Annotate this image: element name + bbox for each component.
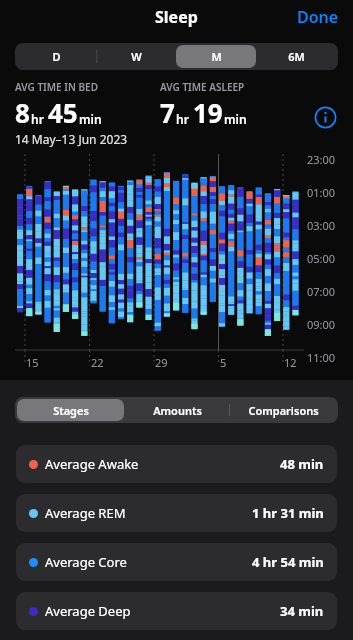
staticText: Done (297, 6, 339, 28)
staticText: min (224, 111, 247, 127)
staticText: 1 hr 31 min (252, 504, 324, 522)
staticText: 14 May–13 Jun 2023 (15, 131, 128, 147)
staticText: Average Core (45, 553, 127, 571)
staticText: Sleep (155, 6, 198, 28)
button[interactable]: Amounts (124, 399, 230, 421)
staticText: 48 min (280, 455, 324, 473)
staticText: 12 (284, 355, 297, 370)
staticText: Stages (53, 403, 89, 418)
staticText: 34 min (280, 602, 324, 620)
button[interactable]: 6M (256, 45, 336, 68)
staticText: Comparisons (248, 403, 319, 418)
button[interactable]: Average REM (16, 494, 337, 532)
staticText: M (211, 49, 222, 64)
button[interactable]: Information (313, 105, 337, 129)
staticText: 29 (155, 355, 168, 370)
staticText: 11:00 (307, 350, 336, 365)
staticText: 01:00 (307, 185, 336, 200)
button[interactable]: W (96, 45, 176, 68)
button[interactable]: Average Core (16, 543, 337, 581)
staticText: 15 (26, 355, 39, 370)
button[interactable]: M (176, 45, 256, 68)
button[interactable]: Done (291, 2, 345, 32)
staticText: 4 hr 54 min (252, 553, 324, 571)
staticText: 7 (160, 95, 175, 130)
staticText: W (131, 49, 142, 64)
button[interactable]: D (17, 45, 96, 68)
staticText: 22 (91, 355, 104, 370)
staticText: AVG TIME IN BED (15, 80, 98, 94)
staticText: 07:00 (307, 284, 336, 299)
staticText: Average Deep (45, 602, 131, 620)
staticText: 6M (288, 49, 305, 64)
staticText: 09:00 (307, 317, 336, 332)
staticText: 8 (15, 95, 30, 130)
staticText: 05:00 (307, 251, 336, 266)
staticText: Average REM (45, 504, 126, 522)
staticText: 5 (220, 355, 227, 370)
staticText: 45 (48, 95, 78, 130)
staticText: Amounts (153, 403, 202, 418)
staticText: AVG TIME ASLEEP (160, 80, 245, 94)
staticText: hr (176, 111, 189, 127)
staticText: 19 (193, 95, 223, 130)
button[interactable]: Average Awake (16, 445, 337, 483)
staticText: hr (31, 111, 44, 127)
staticText: D (52, 49, 61, 64)
staticText: 23:00 (307, 152, 336, 167)
staticText: min (79, 111, 102, 127)
staticText: 03:00 (307, 218, 336, 233)
button[interactable]: Average Deep (16, 592, 337, 630)
button[interactable]: Comparisons (230, 399, 336, 421)
button[interactable]: Stages (17, 399, 124, 421)
staticText: Average Awake (45, 455, 139, 473)
